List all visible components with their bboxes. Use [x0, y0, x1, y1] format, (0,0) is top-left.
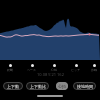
- staticText: ペース: [27, 68, 37, 72]
- button[interactable]: Cadence: [66, 64, 86, 72]
- staticText: 距離: [7, 68, 13, 72]
- staticText: 上下動: [7, 84, 19, 89]
- staticText: 心拍: [58, 84, 66, 89]
- button[interactable]: 上下動: [3, 82, 23, 90]
- button[interactable]: 心拍: [56, 82, 68, 90]
- button[interactable]: 接地時間: [73, 82, 96, 90]
- button[interactable]: Pace: [22, 64, 42, 72]
- staticText: 歩幅: [91, 68, 97, 72]
- button[interactable]: Heart rate: [44, 64, 64, 72]
- button[interactable]: Distance: [0, 64, 20, 72]
- staticText: 接地時間: [77, 84, 93, 89]
- button[interactable]: Stride: [88, 64, 100, 72]
- button[interactable]: 上下動比: [26, 82, 49, 90]
- staticText: ピッチ: [71, 68, 81, 72]
- staticText: 10.08 5'21 162: [37, 72, 64, 77]
- staticText: 心拍: [51, 68, 57, 72]
- staticText: 上下動比: [30, 84, 46, 89]
